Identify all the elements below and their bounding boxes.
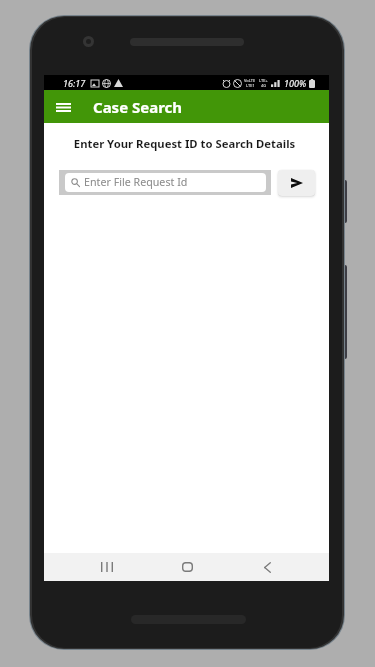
staticText: VoLTE [244, 78, 256, 83]
staticText: Case Search [93, 97, 183, 117]
button[interactable]: Menu [51, 93, 75, 121]
staticText: 4G [261, 83, 267, 88]
button[interactable]: Recent apps [67, 553, 147, 581]
staticText: LTE+ [259, 78, 268, 83]
staticText: 100% [284, 77, 307, 89]
button[interactable]: Back [227, 553, 307, 581]
button[interactable]: Home [147, 553, 227, 581]
staticText: Enter Your Request ID to Search Details [42, 136, 327, 151]
button[interactable]: Enter File Request Id [59, 170, 271, 195]
staticText: 16:17 [63, 77, 86, 89]
staticText: Enter File Request Id [84, 175, 188, 190]
button[interactable]: Send [278, 170, 315, 196]
staticText: LTE1 [246, 83, 255, 88]
